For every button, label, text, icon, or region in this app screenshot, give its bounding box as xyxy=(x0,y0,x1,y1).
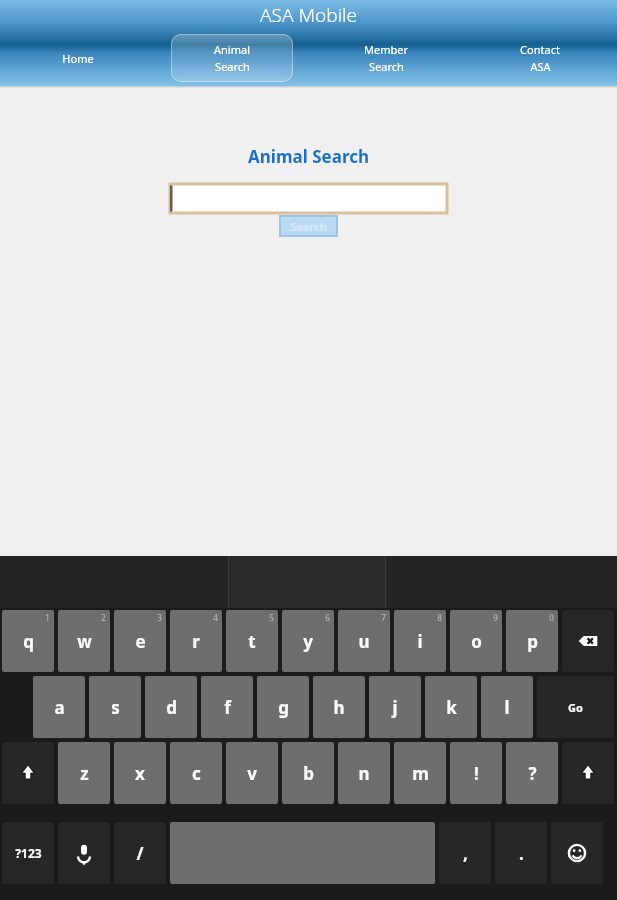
staticText: n xyxy=(358,762,370,785)
button[interactable]: Member xyxy=(309,30,463,86)
staticText: p xyxy=(527,630,538,653)
button[interactable]: Shift xyxy=(2,742,54,804)
button[interactable]: m xyxy=(394,742,446,804)
button[interactable]: q xyxy=(2,610,54,672)
button[interactable]: Animal xyxy=(155,30,309,86)
button[interactable]: b xyxy=(282,742,334,804)
button[interactable]: n xyxy=(338,742,390,804)
staticText: 1 xyxy=(45,612,50,623)
button[interactable]: Emoji xyxy=(551,822,603,884)
button[interactable]: ?123 xyxy=(2,822,54,884)
staticText: t xyxy=(248,630,256,653)
button[interactable]: h xyxy=(313,676,365,738)
staticText: l xyxy=(504,696,510,719)
staticText: r xyxy=(192,630,200,653)
button[interactable]: . xyxy=(495,822,547,884)
button[interactable]: t xyxy=(226,610,278,672)
button[interactable]: v xyxy=(226,742,278,804)
staticText: w xyxy=(77,630,92,653)
button[interactable]: k xyxy=(425,676,477,738)
button[interactable]: x xyxy=(114,742,166,804)
staticText: Search xyxy=(215,59,250,74)
staticText: 3 xyxy=(157,612,162,623)
staticText: Contact xyxy=(520,42,560,57)
button[interactable]: ! xyxy=(450,742,502,804)
staticText: ! xyxy=(474,762,479,785)
staticText: j xyxy=(392,696,398,719)
staticText: f xyxy=(224,696,231,719)
staticText: h xyxy=(333,696,345,719)
staticText: v xyxy=(247,762,257,785)
button[interactable]: / xyxy=(114,822,166,884)
button[interactable]: o xyxy=(450,610,502,672)
staticText: y xyxy=(303,630,313,653)
staticText: o xyxy=(471,630,482,653)
staticText: 9 xyxy=(493,612,498,623)
staticText: c xyxy=(192,762,201,785)
button[interactable]: Contact xyxy=(463,30,617,86)
staticText: Member xyxy=(364,42,408,57)
button[interactable]: Delete xyxy=(562,610,614,672)
staticText: 6 xyxy=(325,612,330,623)
staticText: ASA xyxy=(530,59,551,74)
button[interactable]: Search xyxy=(280,216,337,236)
button[interactable]: l xyxy=(481,676,533,738)
staticText: Animal xyxy=(214,42,250,57)
button[interactable]: c xyxy=(170,742,222,804)
staticText: ? xyxy=(528,762,537,785)
staticText: ASA Mobile xyxy=(260,2,357,28)
staticText: q xyxy=(23,630,34,653)
staticText: e xyxy=(135,630,146,653)
staticText: m xyxy=(412,762,429,785)
staticText: 0 xyxy=(549,612,554,623)
staticText: 5 xyxy=(269,612,274,623)
staticText: 7 xyxy=(381,612,386,623)
staticText: s xyxy=(111,696,120,719)
button[interactable]: w xyxy=(58,610,110,672)
button[interactable]: i xyxy=(394,610,446,672)
staticText: Animal Search xyxy=(248,145,369,168)
button[interactable]: , xyxy=(439,822,491,884)
staticText: i xyxy=(417,630,423,653)
button[interactable]: Voice input xyxy=(58,822,110,884)
staticText: Home xyxy=(62,51,94,66)
staticText: 8 xyxy=(437,612,442,623)
button[interactable]: u xyxy=(338,610,390,672)
staticText: 2 xyxy=(101,612,106,623)
staticText: u xyxy=(358,630,370,653)
button[interactable]: Go xyxy=(537,676,614,738)
staticText: 4 xyxy=(213,612,218,623)
button[interactable]: y xyxy=(282,610,334,672)
button[interactable]: ? xyxy=(506,742,558,804)
staticText: x xyxy=(135,762,145,785)
button[interactable]: d xyxy=(145,676,197,738)
staticText: b xyxy=(303,762,314,785)
button[interactable]: r xyxy=(170,610,222,672)
staticText: z xyxy=(80,762,89,785)
staticText: / xyxy=(136,842,144,865)
staticText: Search xyxy=(290,219,327,234)
button[interactable]: s xyxy=(89,676,141,738)
button[interactable]: f xyxy=(201,676,253,738)
staticText: . xyxy=(519,842,524,865)
button[interactable]: j xyxy=(369,676,421,738)
button[interactable]: g xyxy=(257,676,309,738)
staticText: d xyxy=(166,696,177,719)
button[interactable]: z xyxy=(58,742,110,804)
staticText: ?123 xyxy=(15,845,42,861)
staticText: k xyxy=(446,696,457,719)
staticText: a xyxy=(54,696,65,719)
button[interactable] xyxy=(170,184,447,213)
staticText: Go xyxy=(568,700,583,715)
button[interactable]: Shift xyxy=(562,742,614,804)
staticText: Search xyxy=(369,59,404,74)
button[interactable]: Home xyxy=(0,30,155,86)
button[interactable]: p xyxy=(506,610,558,672)
staticText: , xyxy=(463,842,468,865)
button[interactable]: e xyxy=(114,610,166,672)
button[interactable]: a xyxy=(33,676,85,738)
staticText: g xyxy=(278,696,289,719)
